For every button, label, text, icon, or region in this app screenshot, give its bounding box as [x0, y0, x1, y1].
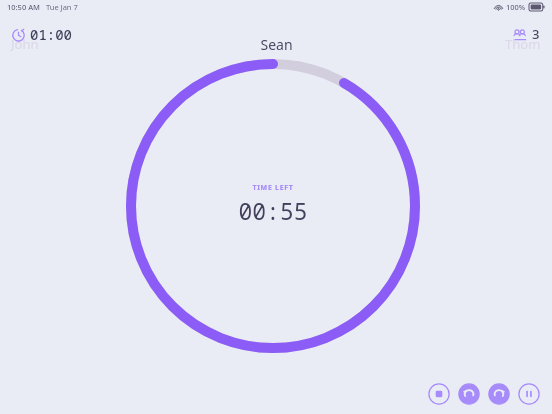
- staticText: 100%: [506, 2, 526, 12]
- button[interactable]: 01:00: [10, 23, 74, 46]
- staticText: 3: [532, 25, 540, 43]
- staticText: 10:50 AM: [7, 2, 40, 12]
- staticText: 01:00: [30, 25, 72, 44]
- button[interactable]: Thom: [505, 35, 541, 53]
- staticText: TIME LEFT: [252, 183, 294, 193]
- button[interactable]: Stop: [428, 383, 450, 405]
- button[interactable]: John: [11, 35, 39, 53]
- staticText: 00:55: [238, 195, 308, 226]
- button[interactable]: Rewind: [458, 383, 480, 405]
- staticText: Tue Jan 7: [46, 2, 78, 12]
- button[interactable]: Forward: [488, 383, 510, 405]
- button[interactable]: Pause: [518, 383, 540, 405]
- staticText: Sean: [260, 35, 293, 54]
- button[interactable]: Participants: [511, 23, 542, 45]
